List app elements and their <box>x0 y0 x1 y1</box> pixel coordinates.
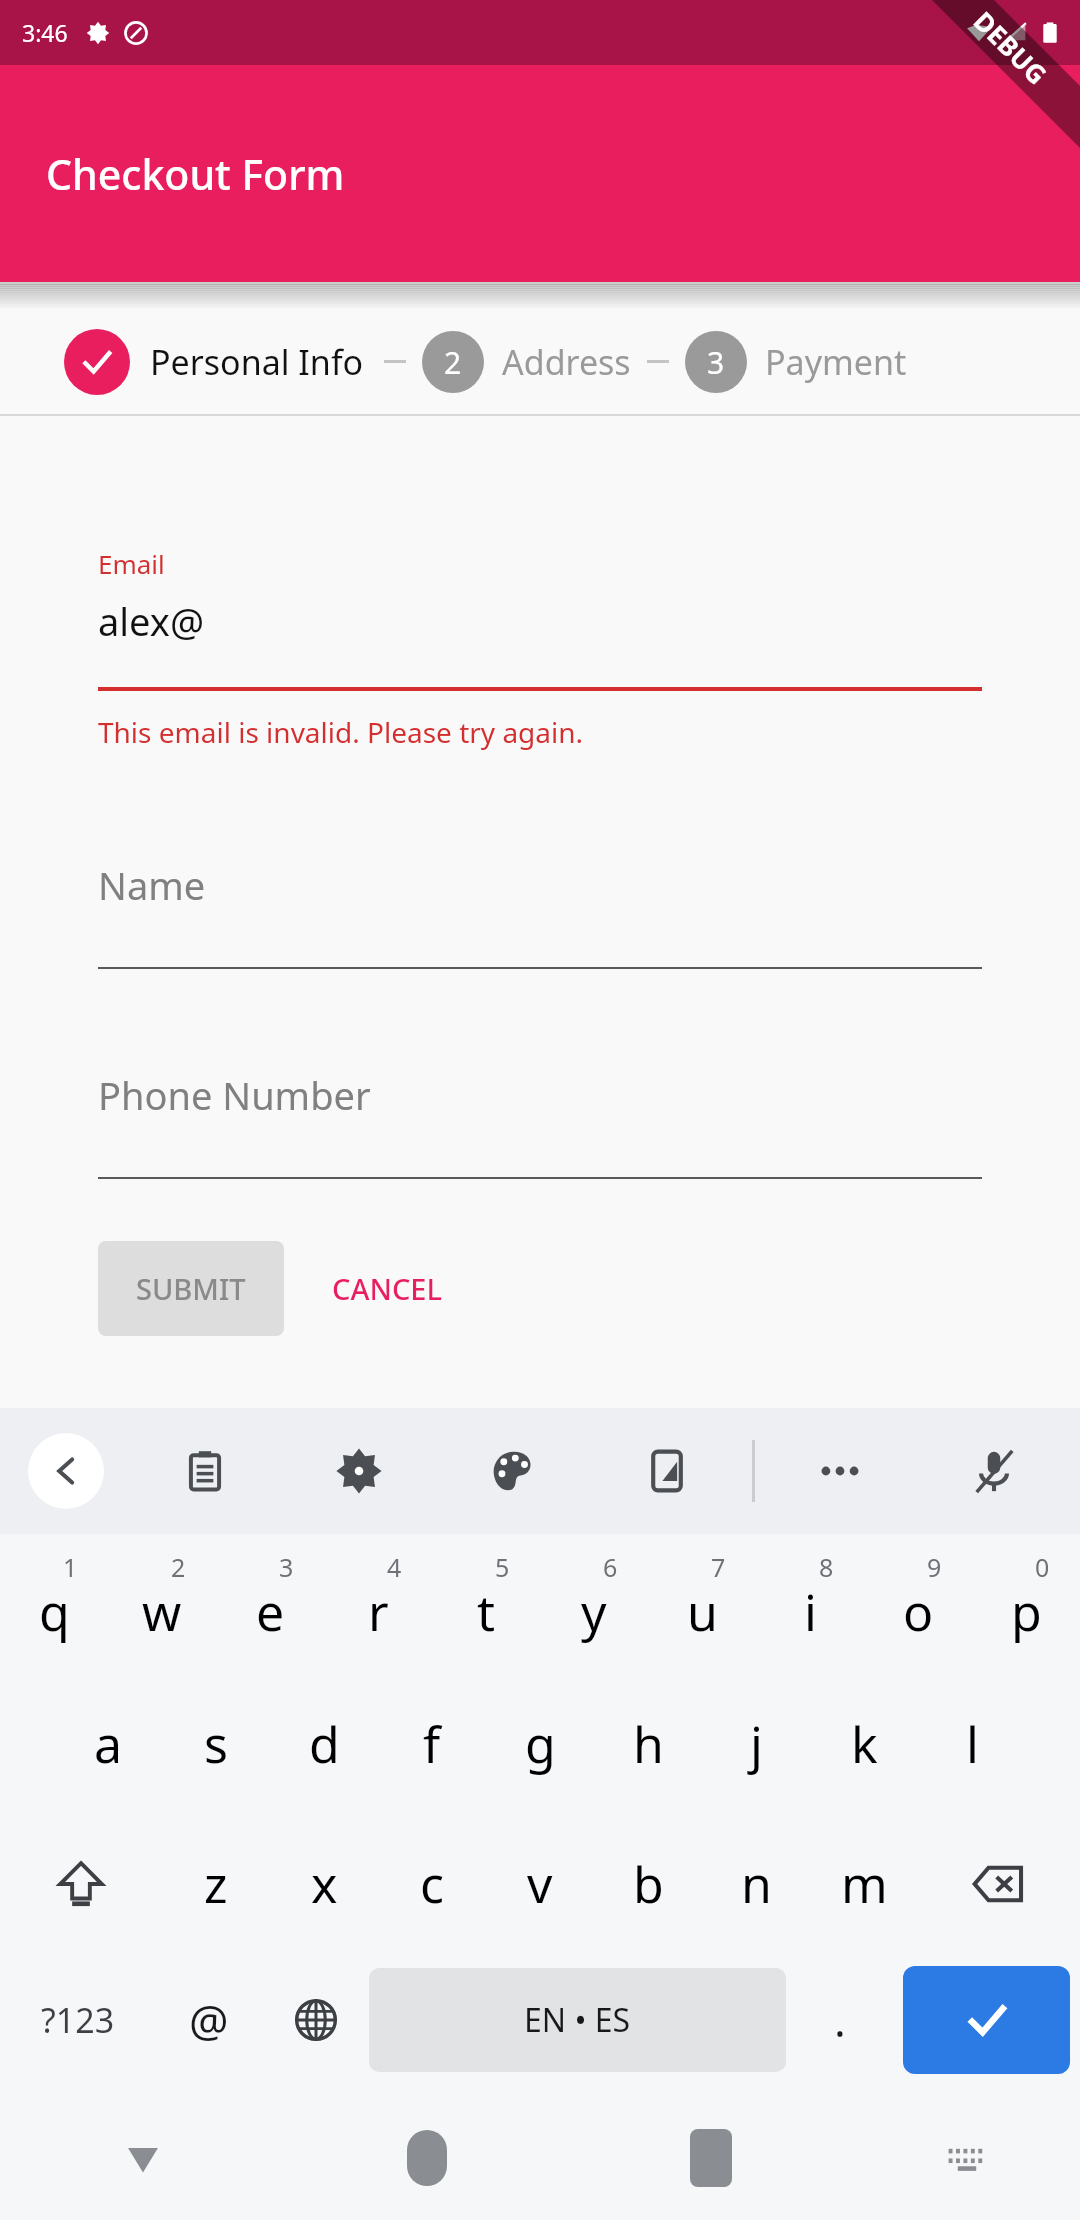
staticText: 9 <box>927 1550 942 1584</box>
button[interactable]: Phone Number <box>98 1069 982 1179</box>
button[interactable]: f <box>378 1674 486 1814</box>
staticText: l <box>966 1710 979 1778</box>
staticText: 6 <box>603 1550 618 1584</box>
staticText: 2 <box>171 1550 186 1584</box>
button[interactable]: d <box>270 1674 378 1814</box>
staticText: y <box>581 1578 607 1646</box>
button[interactable]: v <box>486 1814 594 1954</box>
staticText: 2 <box>444 342 462 383</box>
button[interactable]: s <box>162 1674 270 1814</box>
staticText: Name <box>98 859 206 911</box>
staticText: w <box>142 1578 182 1646</box>
button[interactable]: x <box>270 1814 378 1954</box>
button[interactable]: Back <box>28 1433 104 1509</box>
staticText: m <box>841 1850 888 1918</box>
button[interactable]: Switch keyboard <box>853 2096 1080 2220</box>
staticText: i <box>804 1578 817 1646</box>
button[interactable]: CANCEL <box>306 1241 468 1336</box>
staticText: q <box>39 1578 70 1646</box>
button[interactable]: h <box>594 1674 702 1814</box>
button[interactable]: b <box>594 1814 702 1954</box>
staticText: Address <box>502 339 631 385</box>
button[interactable]: ?123 <box>0 1954 155 2086</box>
staticText: 4 <box>387 1550 402 1584</box>
button[interactable]: Name <box>98 859 982 969</box>
staticText: 7 <box>711 1550 726 1584</box>
staticText: 3:46 <box>22 17 68 48</box>
button[interactable]: 7 <box>648 1534 756 1674</box>
staticText: CANCEL <box>332 1269 442 1308</box>
staticText: t <box>477 1578 496 1646</box>
button[interactable]: EN • ES <box>369 1968 786 2072</box>
button[interactable]: 2 <box>422 331 631 393</box>
staticText: Personal Info <box>150 339 364 385</box>
button[interactable]: 0 <box>972 1534 1080 1674</box>
button[interactable]: Change language <box>262 1954 369 2086</box>
button[interactable]: m <box>810 1814 918 1954</box>
button[interactable]: n <box>702 1814 810 1954</box>
button[interactable]: SUBMIT <box>98 1241 284 1336</box>
button[interactable]: alex@ <box>98 595 205 647</box>
button[interactable]: Backspace <box>918 1814 1080 1954</box>
button[interactable]: Clipboard <box>168 1434 242 1508</box>
staticText: SUBMIT <box>136 1269 246 1308</box>
button[interactable]: 2 <box>108 1534 216 1674</box>
button[interactable]: Themes <box>476 1434 550 1508</box>
staticText: s <box>204 1710 228 1778</box>
staticText: ?123 <box>41 1997 115 2043</box>
button[interactable]: Microphone off <box>957 1434 1031 1508</box>
button[interactable]: 1 <box>0 1534 108 1674</box>
button[interactable]: 4 <box>324 1534 432 1674</box>
button[interactable]: More options <box>803 1434 877 1508</box>
staticText: v <box>527 1850 553 1918</box>
staticText: This email is invalid. Please try again. <box>98 713 584 751</box>
button[interactable]: 9 <box>864 1534 972 1674</box>
button[interactable]: . <box>786 1954 893 2086</box>
button[interactable]: Back <box>0 2096 285 2220</box>
button[interactable]: 3 <box>216 1534 324 1674</box>
staticText: h <box>633 1710 664 1778</box>
staticText: 3 <box>279 1550 294 1584</box>
button[interactable]: l <box>918 1674 1026 1814</box>
button[interactable]: Settings <box>322 1434 396 1508</box>
button[interactable]: 8 <box>756 1534 864 1674</box>
button[interactable]: a <box>54 1674 162 1814</box>
staticText: EN • ES <box>524 1998 631 2042</box>
staticText: f <box>423 1710 441 1778</box>
staticText: Phone Number <box>98 1069 371 1121</box>
button[interactable]: One handed mode <box>630 1434 704 1508</box>
button[interactable]: k <box>810 1674 918 1814</box>
staticText: j <box>750 1710 763 1778</box>
button[interactable]: @ <box>155 1954 262 2086</box>
staticText: e <box>256 1578 285 1646</box>
button[interactable]: 3 <box>685 331 907 393</box>
staticText: n <box>741 1850 772 1918</box>
button[interactable]: 6 <box>540 1534 648 1674</box>
staticText: r <box>368 1578 389 1646</box>
button[interactable]: Home <box>285 2096 569 2220</box>
button[interactable]: z <box>162 1814 270 1954</box>
staticText: 3 <box>707 342 725 383</box>
staticText: 1 <box>63 1550 78 1584</box>
staticText: c <box>420 1850 444 1918</box>
staticText: Checkout Form <box>46 146 345 202</box>
button[interactable]: Recent apps <box>569 2096 853 2220</box>
staticText: a <box>94 1710 123 1778</box>
button[interactable]: c <box>378 1814 486 1954</box>
button[interactable]: 5 <box>432 1534 540 1674</box>
staticText: d <box>309 1710 340 1778</box>
staticText: x <box>311 1850 338 1918</box>
staticText: k <box>851 1710 878 1778</box>
button[interactable]: g <box>486 1674 594 1814</box>
staticText: 5 <box>495 1550 510 1584</box>
staticText: Email <box>98 546 165 581</box>
staticText: 0 <box>1035 1550 1050 1584</box>
button[interactable]: Done <box>903 1966 1070 2074</box>
staticText: Payment <box>765 339 907 385</box>
button[interactable]: Personal Info <box>64 329 368 395</box>
staticText: 8 <box>819 1550 834 1584</box>
button[interactable]: j <box>702 1674 810 1814</box>
staticText: p <box>1011 1578 1042 1646</box>
button[interactable]: Shift <box>0 1814 162 1954</box>
staticText: z <box>204 1850 228 1918</box>
